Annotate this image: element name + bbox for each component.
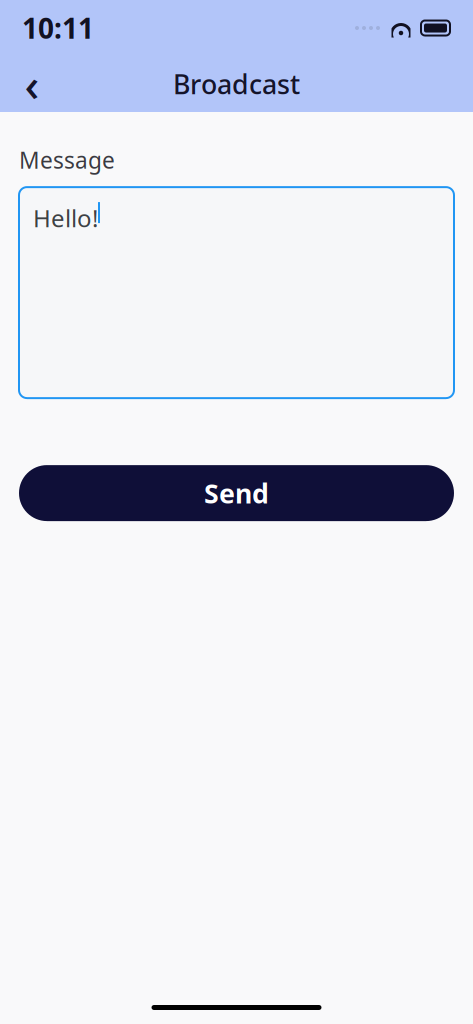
staticText: ‹ (24, 54, 39, 114)
button[interactable]: Send (19, 465, 454, 521)
staticText: 10:11 (22, 9, 94, 47)
staticText: Message (19, 145, 115, 175)
button[interactable]: Back (12, 62, 52, 106)
staticText: Broadcast (173, 66, 300, 102)
button[interactable]: Hello! (19, 187, 454, 398)
staticText: Hello! (33, 202, 98, 234)
staticText: Send (204, 475, 269, 511)
